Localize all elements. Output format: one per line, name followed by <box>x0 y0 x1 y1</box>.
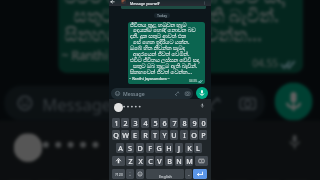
button[interactable]: Google assistant <box>114 103 123 112</box>
staticText: M <box>186 156 193 166</box>
button[interactable]: M <box>185 156 193 166</box>
button[interactable]: X <box>136 156 144 166</box>
button[interactable]: Message <box>4 86 265 121</box>
button[interactable]: L <box>194 143 202 153</box>
staticText: Y <box>162 130 167 140</box>
button[interactable]: 5 <box>151 118 159 128</box>
button[interactable]: Z <box>126 156 134 166</box>
staticText: 7 <box>172 118 177 128</box>
staticText: I <box>183 130 186 140</box>
button[interactable]: F <box>146 143 154 153</box>
button[interactable]: Shift <box>112 156 125 166</box>
button[interactable]: R <box>141 130 149 140</box>
button[interactable]: Google assistant <box>14 133 42 162</box>
staticText: 4 <box>143 118 148 128</box>
button[interactable]: V <box>155 156 163 166</box>
button[interactable]: G <box>155 143 163 153</box>
staticText: . <box>188 171 190 178</box>
button[interactable]: B <box>165 156 173 166</box>
button[interactable]: S <box>126 143 134 153</box>
staticText: D <box>137 143 143 153</box>
button[interactable]: Voice input <box>200 103 205 109</box>
button[interactable]: J <box>175 143 183 153</box>
button[interactable]: A <box>116 143 124 153</box>
staticText: J <box>178 143 180 153</box>
button[interactable]: N <box>175 156 183 166</box>
staticText: 5 <box>153 118 158 128</box>
button[interactable]: Emoji <box>136 169 144 179</box>
button[interactable]: Backspace <box>195 156 208 166</box>
button[interactable]: W <box>121 130 129 140</box>
staticText: T <box>153 130 157 140</box>
staticText: Message <box>42 92 112 114</box>
staticText: W <box>122 130 129 140</box>
button[interactable]: Message <box>111 88 193 99</box>
button[interactable]: Q <box>112 130 120 140</box>
staticText: ජීවිතය තුළ හමුවන හැම දෙයක්ම හොඳ නොවන බව … <box>130 22 205 76</box>
staticText: C <box>148 156 153 166</box>
button[interactable]: P <box>199 130 207 140</box>
button[interactable]: T <box>151 130 159 140</box>
staticText: A <box>118 143 123 153</box>
staticText: P <box>201 130 206 140</box>
button[interactable]: 9 <box>190 118 198 128</box>
button[interactable]: ?123 <box>112 169 125 179</box>
staticText: O <box>191 130 197 140</box>
staticText: 9 <box>192 118 197 128</box>
staticText: Today <box>157 13 167 18</box>
button[interactable]: 6 <box>160 118 168 128</box>
staticText: Q <box>113 130 119 140</box>
staticText: N <box>176 156 182 166</box>
button[interactable]: Voice input <box>287 133 303 152</box>
button[interactable]: Voice message <box>196 87 208 99</box>
staticText: ~ Ranthi Jayasundara ~ <box>129 76 170 81</box>
staticText: 2 <box>123 118 128 128</box>
staticText: V <box>157 156 162 166</box>
button[interactable]: 2 <box>121 118 129 128</box>
staticText: 0 <box>201 118 206 128</box>
staticText: K <box>187 143 192 153</box>
button[interactable]: 7 <box>170 118 178 128</box>
button[interactable]: E <box>131 130 139 140</box>
button[interactable]: Today <box>154 13 170 18</box>
button[interactable]: ජීවිතය තුළ හමුවන හැම දෙයක්ම හොඳ නොවන බව … <box>58 0 303 73</box>
button[interactable]: Y <box>160 130 168 140</box>
staticText: 04.55 <box>189 79 198 83</box>
button[interactable]: 3 <box>131 118 139 128</box>
button[interactable]: D <box>136 143 144 153</box>
button[interactable]: K <box>185 143 193 153</box>
staticText: S <box>128 143 132 153</box>
button[interactable]: Space <box>146 169 184 179</box>
staticText: ජීවිතය තුළ හමුවන හැම දෙයක්ම හොඳ නොවන බව … <box>65 0 303 47</box>
staticText: Z <box>128 156 133 166</box>
button[interactable]: I <box>180 130 188 140</box>
staticText: R <box>143 130 148 140</box>
button[interactable]: . <box>185 169 192 179</box>
button[interactable]: Enter <box>193 169 207 179</box>
staticText: 1 <box>114 118 119 128</box>
button[interactable]: 8 <box>180 118 188 128</box>
staticText: ?123 <box>115 172 123 177</box>
staticText: Message <box>123 90 145 97</box>
staticText: Message yourself <box>130 1 160 6</box>
button[interactable]: Voice message <box>274 82 313 121</box>
button[interactable]: 1 <box>112 118 120 128</box>
button[interactable]: 4 <box>141 118 149 128</box>
button[interactable]: ජීවිතය තුළ හමුවන හැම දෙයක්ම හොඳ නොවන බව … <box>128 22 205 84</box>
staticText: U <box>171 130 177 140</box>
button[interactable]: Back <box>110 0 114 4</box>
button[interactable]: H <box>165 143 173 153</box>
staticText: B <box>167 156 172 166</box>
staticText: 3 <box>133 118 138 128</box>
button[interactable]: Comma <box>126 169 134 179</box>
staticText: English <box>159 174 172 179</box>
button[interactable]: Profile photo <box>121 0 126 4</box>
staticText: ~ Ranthi Jayasundara ~ <box>61 47 192 63</box>
button[interactable]: O <box>190 130 198 140</box>
button[interactable]: 0 <box>199 118 207 128</box>
button[interactable]: C <box>146 156 154 166</box>
button[interactable]: U <box>170 130 178 140</box>
staticText: L <box>196 143 200 153</box>
button[interactable]: More options <box>202 1 207 5</box>
staticText: 04.55 <box>252 57 281 70</box>
